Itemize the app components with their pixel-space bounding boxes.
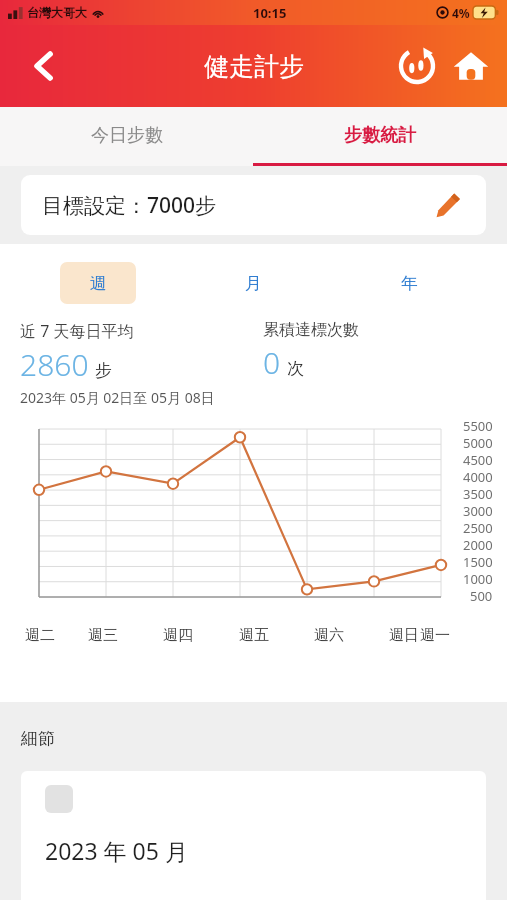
staticText: 10:15: [253, 4, 287, 22]
staticText: 1500: [463, 553, 493, 570]
staticText: 2860: [20, 344, 89, 385]
button[interactable]: 今日步數: [0, 107, 253, 163]
staticText: 500: [470, 587, 493, 604]
staticText: 次: [287, 358, 304, 379]
staticText: 2000: [463, 536, 493, 553]
staticText: 月: [245, 273, 262, 294]
staticText: 週日: [389, 626, 419, 645]
staticText: 4%: [452, 5, 470, 21]
staticText: 4000: [463, 468, 493, 485]
staticText: 細節: [21, 728, 55, 749]
staticText: 台灣大哥大: [27, 5, 87, 20]
staticText: 累積達標次數: [263, 320, 359, 340]
staticText: 3500: [463, 485, 493, 502]
button[interactable]: Back: [22, 44, 66, 88]
staticText: 0: [263, 342, 281, 383]
staticText: 5500: [463, 417, 493, 434]
button[interactable]: 週: [60, 262, 136, 304]
button[interactable]: Home: [445, 40, 497, 92]
staticText: 5000: [463, 434, 493, 451]
staticText: 週二: [25, 626, 55, 645]
staticText: 2023年 05月 02日至 05月 08日: [20, 388, 215, 407]
staticText: 近 7 天每日平均: [20, 320, 134, 342]
staticText: 2023 年 05 月: [45, 835, 188, 866]
staticText: 週四: [163, 626, 193, 645]
button[interactable]: Edit goal: [431, 188, 465, 222]
staticText: 4500: [463, 451, 493, 468]
staticText: 1000: [463, 570, 493, 587]
staticText: 週五: [239, 626, 269, 645]
staticText: 步數統計: [344, 124, 416, 147]
staticText: 步: [95, 360, 112, 381]
staticText: 週: [90, 273, 107, 294]
staticText: 2500: [463, 519, 493, 536]
staticText: 年: [401, 273, 418, 294]
staticText: 週六: [314, 626, 344, 645]
button[interactable]: 月: [215, 262, 291, 304]
button[interactable]: Refresh steps: [391, 40, 443, 92]
staticText: 目標設定：7000步: [42, 191, 217, 220]
button[interactable]: 目標設定：7000步: [21, 175, 486, 235]
staticText: 健走計步: [204, 51, 304, 82]
button[interactable]: 年: [371, 262, 447, 304]
button[interactable]: 2023 年 05 月: [21, 771, 486, 900]
staticText: 今日步數: [91, 124, 163, 147]
staticText: 週三: [88, 626, 118, 645]
button[interactable]: 步數統計: [253, 107, 507, 163]
staticText: 3000: [463, 502, 493, 519]
staticText: 週一: [420, 626, 450, 645]
